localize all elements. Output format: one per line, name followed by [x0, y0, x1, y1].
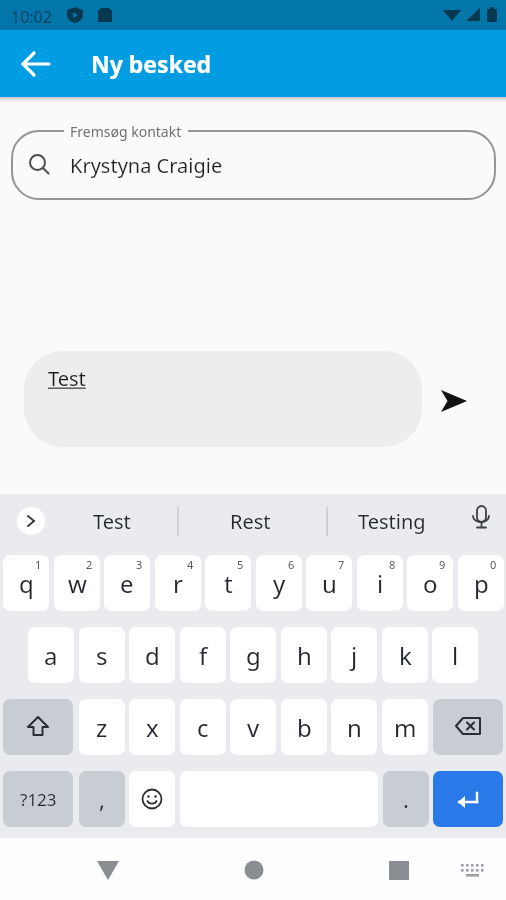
staticText: 1	[35, 557, 42, 572]
staticText: 2	[86, 557, 93, 572]
staticText: h	[297, 639, 312, 672]
staticText: 3	[136, 557, 143, 572]
button[interactable]	[450, 848, 494, 892]
button[interactable]: n	[331, 699, 377, 755]
button[interactable]	[367, 848, 411, 892]
staticText: c	[197, 711, 209, 744]
button[interactable]: ,	[79, 771, 125, 827]
staticText: s	[96, 639, 108, 672]
staticText: Test	[93, 508, 131, 535]
staticText: Test	[48, 365, 86, 392]
staticText: g	[246, 639, 261, 672]
button[interactable]: h	[281, 627, 327, 683]
button[interactable]: c	[180, 699, 226, 755]
staticText: .	[403, 784, 409, 814]
button[interactable]: u	[306, 555, 352, 611]
button[interactable]	[129, 771, 175, 827]
staticText: t	[224, 567, 233, 600]
staticText: k	[399, 639, 412, 672]
staticText: v	[247, 711, 260, 744]
button[interactable]: l	[432, 627, 478, 683]
button[interactable]: w	[54, 555, 100, 611]
staticText: e	[120, 567, 134, 600]
staticText: Fremsøg kontakt	[70, 122, 182, 141]
staticText: l	[452, 639, 459, 672]
staticText: Ny besked	[91, 48, 212, 79]
staticText: m	[394, 711, 417, 744]
staticText: 10:02	[11, 6, 52, 28]
staticText: b	[297, 711, 312, 744]
button[interactable]: d	[129, 627, 175, 683]
button[interactable]: v	[230, 699, 276, 755]
staticText: 8	[389, 557, 396, 572]
button[interactable]: s	[79, 627, 125, 683]
button[interactable]	[232, 848, 276, 892]
button[interactable]: b	[281, 699, 327, 755]
button[interactable]: m	[382, 699, 428, 755]
staticText: 0	[490, 557, 497, 572]
button[interactable]: Testing	[337, 494, 447, 549]
button[interactable]	[432, 379, 476, 423]
staticText: u	[322, 567, 337, 600]
button[interactable]: j	[331, 627, 377, 683]
button[interactable]: Rest	[188, 494, 312, 549]
staticText: Testing	[358, 508, 426, 535]
button[interactable]: i	[357, 555, 403, 611]
staticText: ,	[99, 784, 105, 814]
button[interactable]	[433, 771, 503, 827]
staticText: q	[19, 567, 34, 600]
button[interactable]: f	[180, 627, 226, 683]
staticText: d	[145, 639, 160, 672]
button[interactable]: t	[205, 555, 251, 611]
staticText: Krystyna Craigie	[70, 152, 223, 179]
staticText: j	[351, 639, 358, 672]
staticText: a	[44, 639, 58, 672]
button[interactable]: p	[458, 555, 504, 611]
button[interactable]	[17, 507, 45, 535]
staticText: y	[273, 567, 286, 600]
button[interactable]: Krystyna Craigie	[11, 130, 496, 200]
staticText: i	[377, 567, 384, 600]
staticText: z	[96, 711, 108, 744]
staticText: 6	[288, 557, 295, 572]
button[interactable]: a	[28, 627, 74, 683]
staticText: 5	[237, 557, 244, 572]
button[interactable]: o	[407, 555, 453, 611]
button[interactable]	[86, 848, 130, 892]
staticText: r	[173, 567, 183, 600]
button[interactable]	[433, 699, 503, 755]
button[interactable]: x	[129, 699, 175, 755]
button[interactable]: z	[79, 699, 125, 755]
staticText: ?123	[20, 788, 57, 811]
staticText: 9	[439, 557, 446, 572]
staticText: o	[423, 567, 438, 600]
button[interactable]	[14, 42, 58, 86]
staticText: x	[146, 711, 159, 744]
button[interactable]: e	[104, 555, 150, 611]
staticText: 4	[187, 557, 194, 572]
staticText: w	[68, 567, 87, 600]
button[interactable]: g	[230, 627, 276, 683]
button[interactable]: Test	[24, 351, 422, 447]
button[interactable]: y	[256, 555, 302, 611]
button[interactable]: k	[382, 627, 428, 683]
staticText: 7	[338, 557, 345, 572]
button[interactable]: Test	[60, 494, 163, 549]
button[interactable]: ?123	[3, 771, 73, 827]
button[interactable]	[3, 699, 73, 755]
staticText: f	[199, 639, 208, 672]
button[interactable]: r	[155, 555, 201, 611]
staticText: n	[347, 711, 362, 744]
staticText: p	[474, 567, 489, 600]
button[interactable]: .	[383, 771, 429, 827]
staticText: Rest	[230, 508, 271, 535]
button[interactable]: q	[3, 555, 49, 611]
